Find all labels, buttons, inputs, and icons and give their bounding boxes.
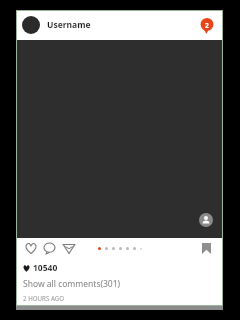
staticText: 10540: [33, 262, 58, 274]
button[interactable]: Save: [198, 240, 214, 256]
button[interactable]: Profile picture: [22, 16, 40, 34]
staticText: 2 HOURS AGO: [23, 294, 65, 302]
button[interactable]: Tagged people: [199, 213, 213, 227]
button[interactable]: Like: [21, 238, 40, 258]
button[interactable]: Profile picture: [16, 10, 223, 40]
staticText: Username: [47, 19, 91, 31]
button[interactable]: Comment: [40, 238, 59, 258]
staticText: 2: [205, 21, 209, 30]
button[interactable]: Show all comments(301): [23, 278, 121, 290]
button[interactable]: Notifications: 2: [199, 17, 215, 33]
staticText: Show all comments(301): [23, 278, 121, 290]
button[interactable]: Share: [59, 238, 78, 258]
button[interactable]: Tagged people: [16, 40, 223, 238]
